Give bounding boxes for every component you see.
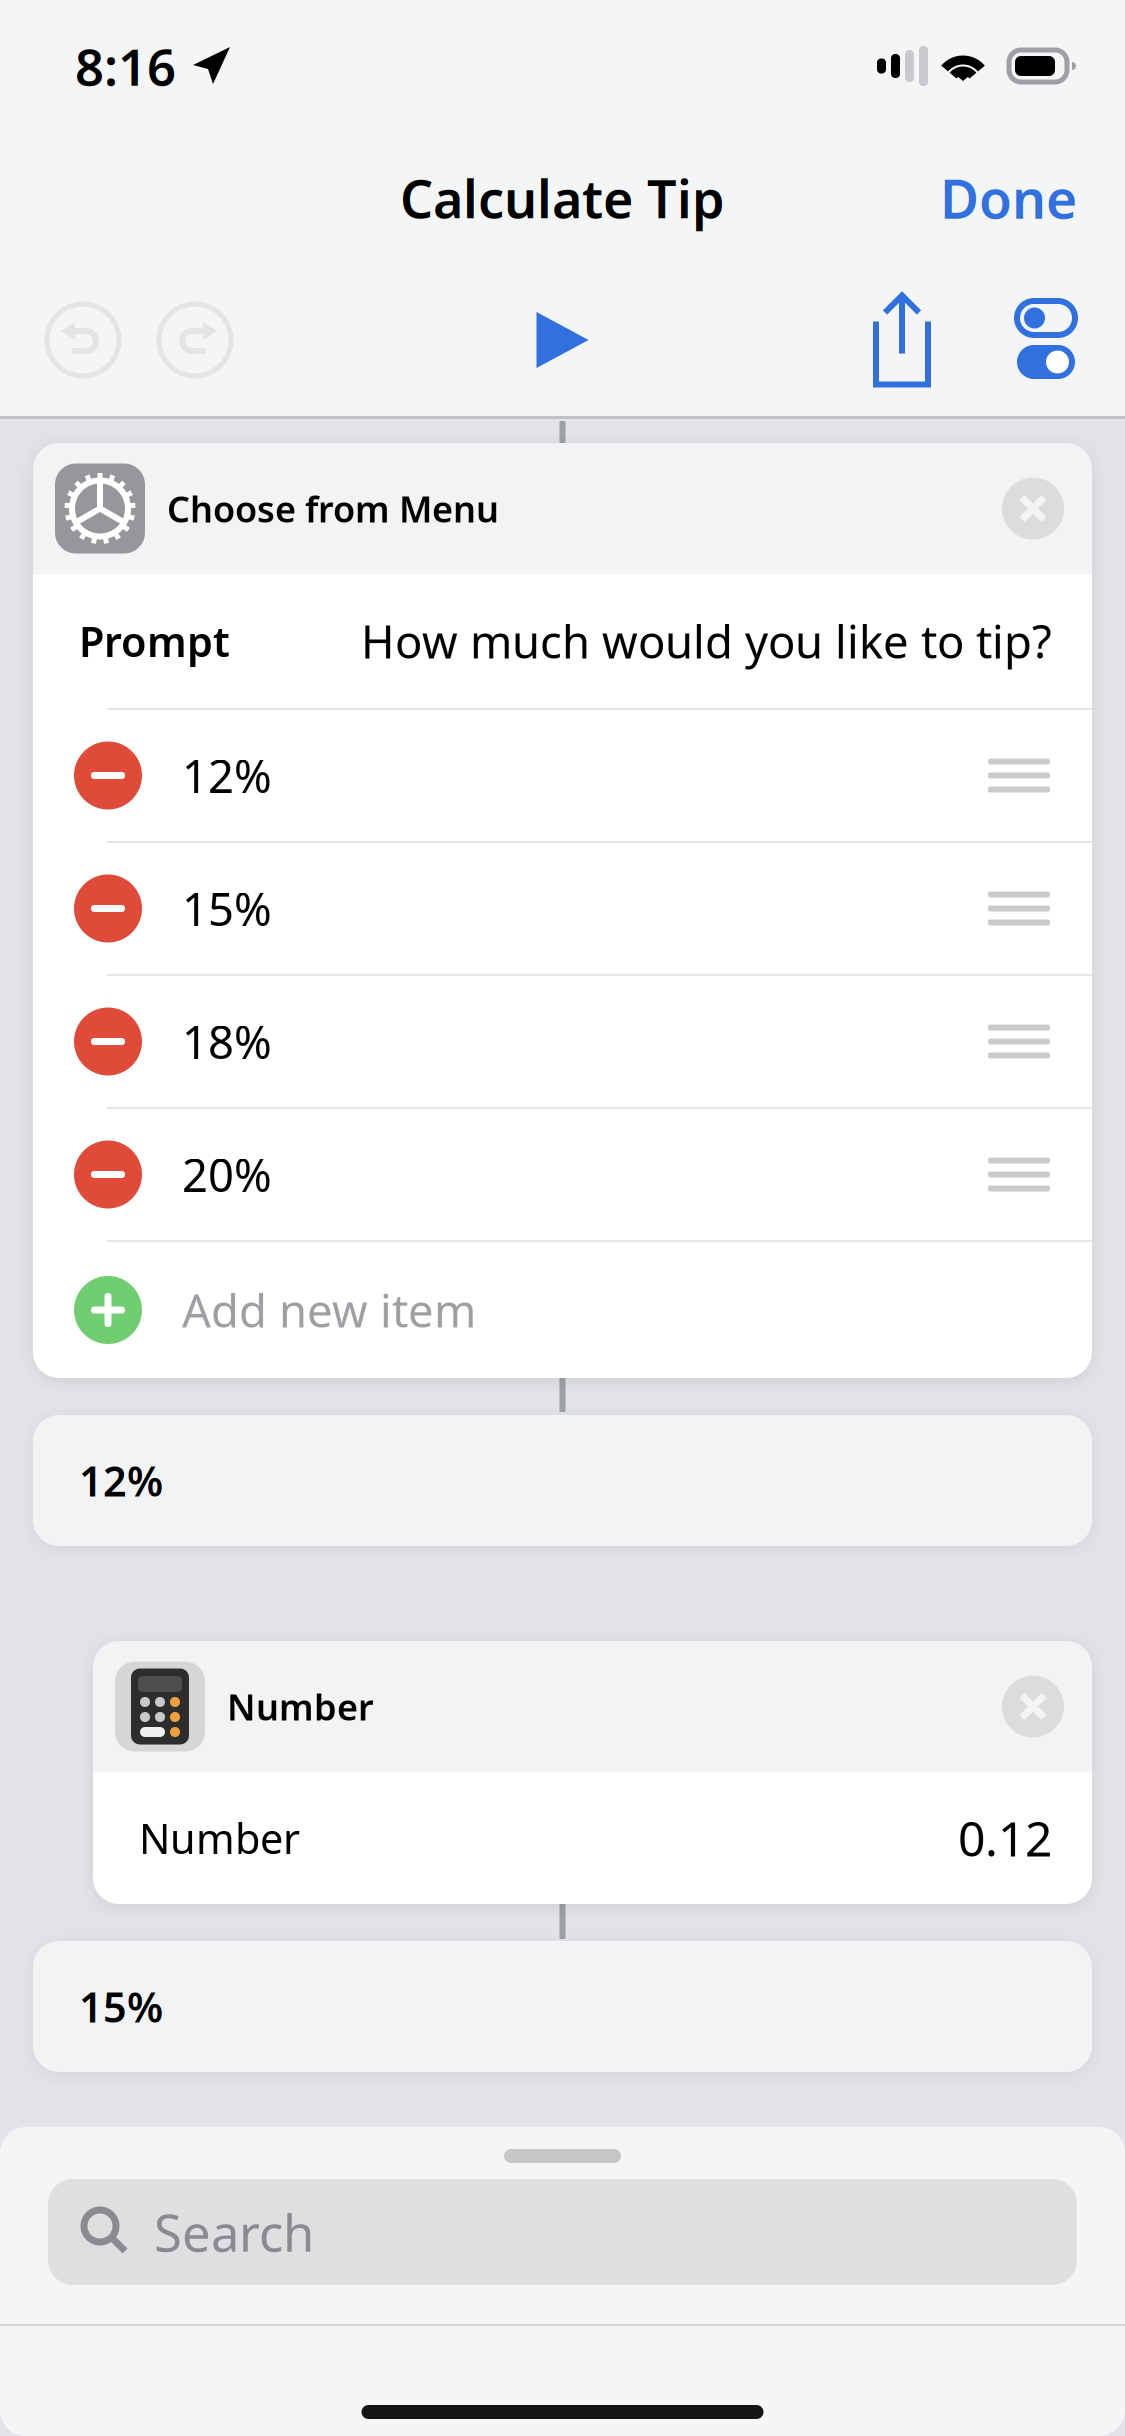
staticText: Number <box>139 1811 300 1865</box>
staticText: 0.12 <box>958 1806 1052 1870</box>
staticText: 18% <box>182 1011 272 1072</box>
staticText: 15% <box>182 878 272 939</box>
staticText: 20% <box>182 1144 272 1205</box>
staticText: Done <box>940 163 1077 233</box>
button[interactable]: Run shortcut <box>508 284 616 396</box>
button[interactable]: Delete action <box>1002 477 1064 539</box>
button[interactable]: Done <box>900 141 1125 255</box>
button[interactable]: Share <box>857 291 996 388</box>
button[interactable]: Shortcut settings <box>996 300 1096 380</box>
button[interactable]: 12% <box>33 710 1092 841</box>
staticText: Calculate Tip <box>400 163 725 233</box>
button[interactable]: 15% <box>33 843 1092 974</box>
staticText: How much would you like to tip? <box>361 611 1052 671</box>
staticText: 8:16 <box>75 32 176 100</box>
staticText: Search <box>154 2198 314 2266</box>
staticText: 12% <box>182 745 272 806</box>
button[interactable]: Delete action <box>1002 1675 1064 1737</box>
button[interactable]: 18% <box>33 976 1092 1107</box>
staticText: Prompt <box>79 614 230 668</box>
button[interactable]: Undo <box>27 300 139 380</box>
staticText: 12% <box>79 1453 163 1508</box>
button[interactable]: 20% <box>33 1109 1092 1240</box>
staticText: Choose from Menu <box>167 485 499 532</box>
button[interactable]: Add new item <box>33 1242 1092 1378</box>
staticText: Number <box>227 1683 374 1730</box>
button[interactable]: Redo <box>139 300 251 380</box>
staticText: 15% <box>79 1979 163 2034</box>
staticText: Add new item <box>182 1280 476 1340</box>
